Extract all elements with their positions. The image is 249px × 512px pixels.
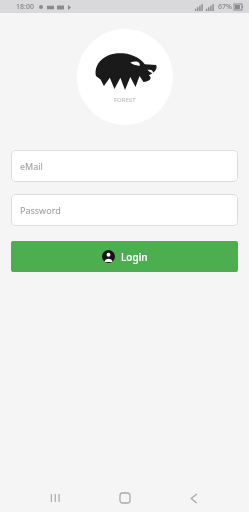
- button[interactable]: Recent apps: [40, 484, 70, 512]
- button[interactable]: Login: [11, 241, 238, 272]
- staticText: eMail: [20, 160, 43, 172]
- staticText: FOREST: [114, 96, 136, 104]
- staticText: Login: [121, 250, 148, 264]
- staticText: 18:00: [16, 2, 34, 12]
- button[interactable]: eMail: [11, 150, 238, 182]
- button[interactable]: Home: [110, 484, 140, 512]
- button[interactable]: Back: [179, 484, 209, 512]
- staticText: 67%: [218, 2, 232, 12]
- button[interactable]: Password: [11, 194, 238, 226]
- staticText: Password: [20, 204, 61, 216]
